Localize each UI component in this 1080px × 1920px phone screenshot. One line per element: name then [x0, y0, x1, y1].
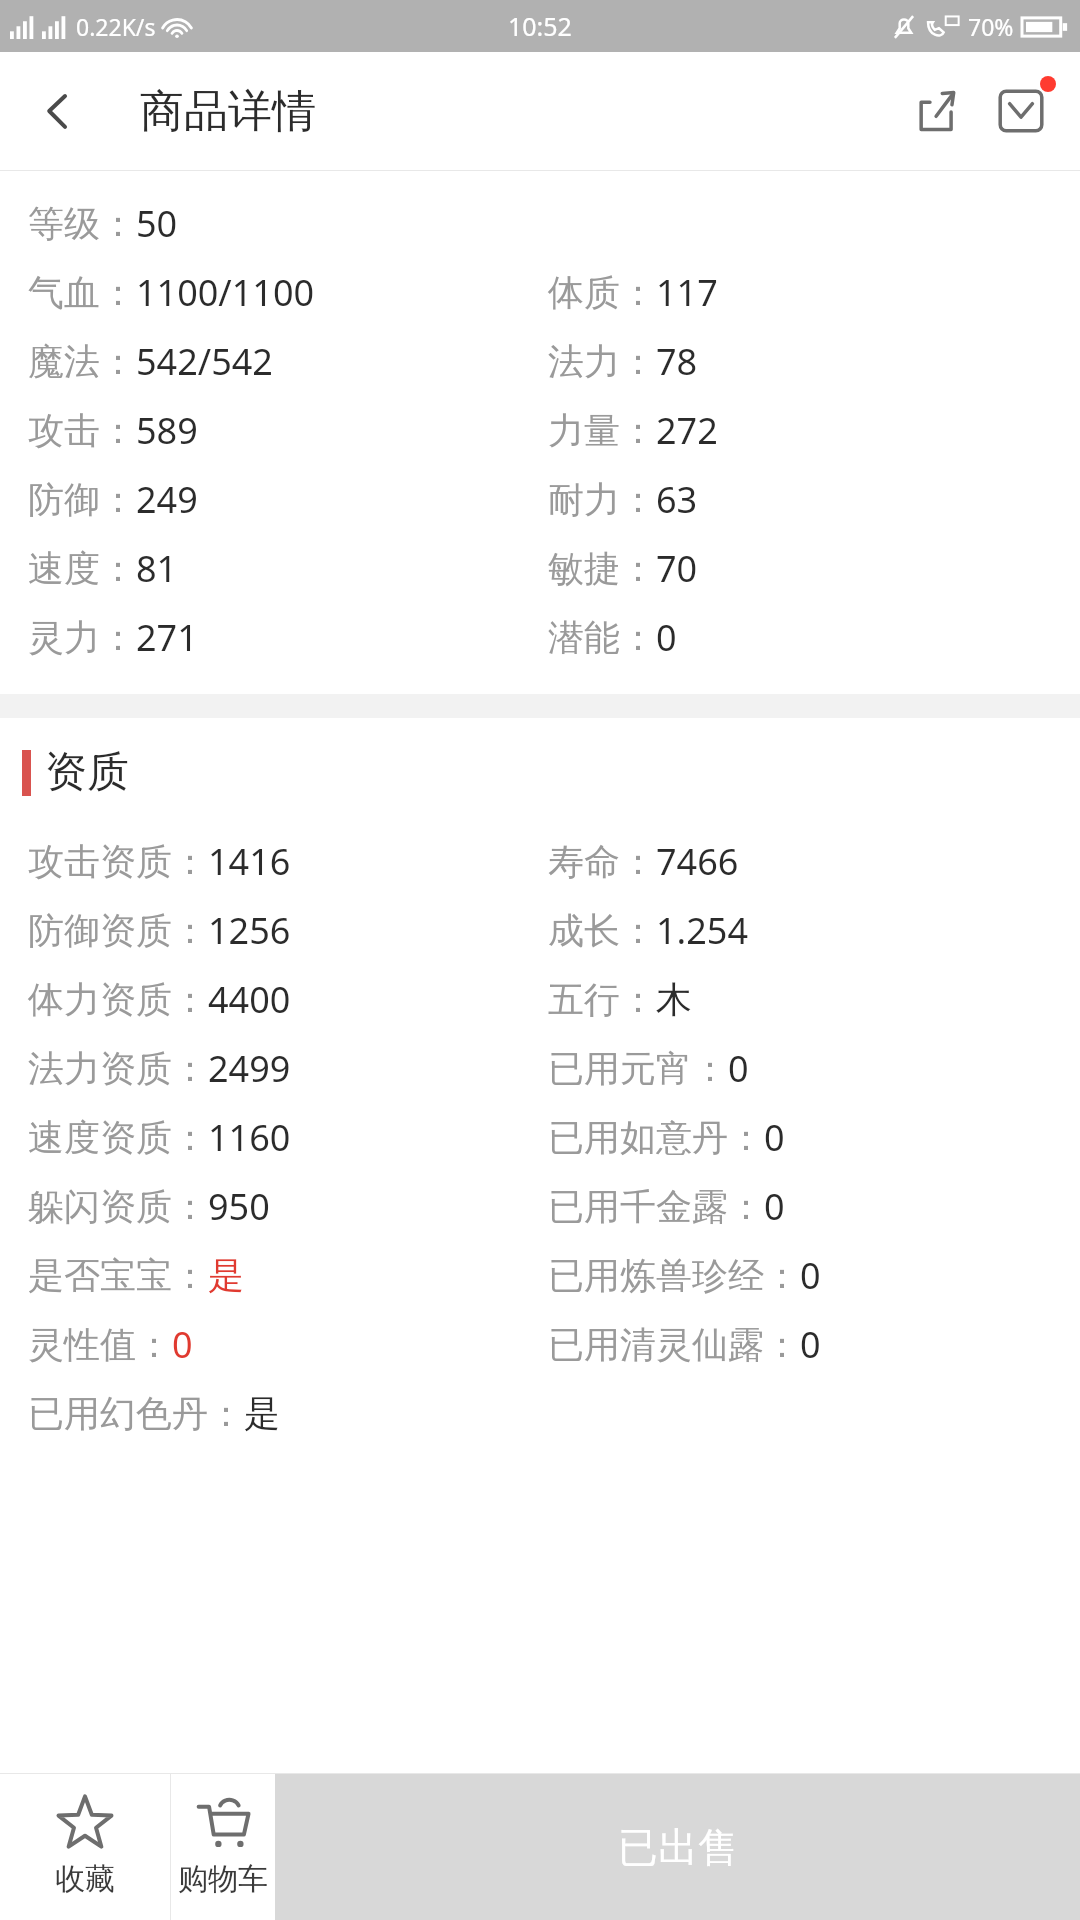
staticText: 攻击： — [28, 408, 136, 453]
staticText: 63 — [656, 475, 698, 524]
staticText: 成长： — [548, 908, 656, 953]
staticText: 已用千金露： — [548, 1184, 764, 1229]
staticText: 已用幻色丹： — [28, 1391, 244, 1436]
staticText: 1100/1100 — [136, 268, 315, 317]
staticText: 气血： — [28, 270, 136, 315]
staticText: 1160 — [208, 1113, 291, 1162]
staticText: 木 — [656, 977, 692, 1022]
staticText: 等级： — [28, 201, 136, 246]
staticText: 0 — [728, 1044, 749, 1093]
staticText: 70% — [968, 11, 1014, 42]
staticText: 0 — [764, 1182, 785, 1231]
staticText: 体力资质： — [28, 977, 208, 1022]
staticText: 魔法： — [28, 339, 136, 384]
staticText: 7466 — [656, 837, 739, 886]
staticText: 0 — [764, 1113, 785, 1162]
staticText: 收藏 — [55, 1860, 115, 1898]
staticText: 589 — [136, 406, 198, 455]
button[interactable]: Messages — [984, 74, 1058, 148]
staticText: 0 — [656, 613, 677, 662]
staticText: 1.254 — [656, 906, 749, 955]
staticText: 已用清灵仙露： — [548, 1322, 800, 1367]
staticText: 272 — [656, 406, 718, 455]
staticText: 速度： — [28, 546, 136, 591]
button[interactable]: 收藏 — [0, 1774, 170, 1920]
button[interactable]: 已出售 — [275, 1774, 1080, 1920]
staticText: 寿命： — [548, 839, 656, 884]
staticText: 法力： — [548, 339, 656, 384]
staticText: 已用元宵： — [548, 1046, 728, 1091]
staticText: 资质 — [45, 746, 129, 799]
staticText: 542/542 — [136, 337, 273, 386]
staticText: 1416 — [208, 837, 291, 886]
staticText: 商品详情 — [140, 84, 316, 139]
staticText: 10:52 — [508, 9, 572, 43]
button[interactable]: 购物车 — [171, 1774, 275, 1920]
staticText: 249 — [136, 475, 198, 524]
staticText: 购物车 — [178, 1860, 268, 1898]
button[interactable]: Back — [28, 81, 88, 141]
staticText: 271 — [136, 613, 198, 662]
staticText: 1256 — [208, 906, 291, 955]
staticText: 灵力： — [28, 615, 136, 660]
staticText: 50 — [136, 199, 178, 248]
staticText: 0 — [172, 1320, 193, 1369]
staticText: 耐力： — [548, 477, 656, 522]
staticText: 灵性值： — [28, 1322, 172, 1367]
staticText: 敏捷： — [548, 546, 656, 591]
staticText: 0.22K/s — [76, 11, 156, 42]
staticText: 躲闪资质： — [28, 1184, 208, 1229]
staticText: 78 — [656, 337, 698, 386]
staticText: 攻击资质： — [28, 839, 208, 884]
staticText: 防御： — [28, 477, 136, 522]
staticText: 已出售 — [618, 1822, 738, 1872]
staticText: 力量： — [548, 408, 656, 453]
button[interactable]: Share — [904, 78, 970, 144]
staticText: 法力资质： — [28, 1046, 208, 1091]
staticText: 4400 — [208, 975, 291, 1024]
staticText: 117 — [656, 268, 718, 317]
staticText: 是 — [208, 1253, 244, 1298]
staticText: 70 — [656, 544, 698, 593]
staticText: 已用炼兽珍经： — [548, 1253, 800, 1298]
staticText: 体质： — [548, 270, 656, 315]
staticText: 81 — [136, 544, 178, 593]
staticText: 950 — [208, 1182, 270, 1231]
staticText: 潜能： — [548, 615, 656, 660]
staticText: 2499 — [208, 1044, 291, 1093]
staticText: 是否宝宝： — [28, 1253, 208, 1298]
staticText: 0 — [800, 1320, 821, 1369]
staticText: 防御资质： — [28, 908, 208, 953]
staticText: 速度资质： — [28, 1115, 208, 1160]
staticText: 是 — [244, 1391, 280, 1436]
staticText: 五行： — [548, 977, 656, 1022]
staticText: 已用如意丹： — [548, 1115, 764, 1160]
staticText: 0 — [800, 1251, 821, 1300]
